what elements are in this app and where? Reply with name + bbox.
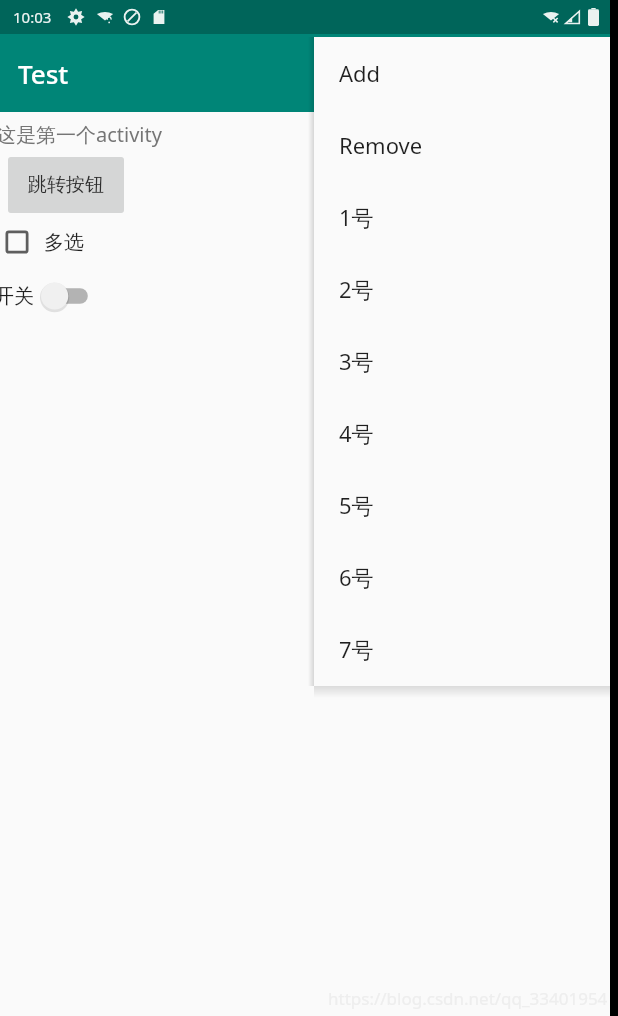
button[interactable]: 5号 — [314, 469, 610, 541]
staticText: Remove — [339, 130, 423, 160]
button[interactable]: Add — [314, 37, 610, 109]
staticText: 7号 — [339, 634, 374, 664]
staticText: https://blog.csdn.net/qq_33401954 — [328, 987, 608, 1010]
staticText: 开关 — [0, 284, 34, 309]
button[interactable]: Remove — [314, 109, 610, 181]
button[interactable]: 6号 — [314, 541, 610, 613]
button[interactable]: 跳转按钮 — [8, 157, 124, 213]
button[interactable]: 1号 — [314, 181, 610, 253]
staticText: 5号 — [339, 490, 374, 520]
staticText: 这是第一个activity — [0, 121, 162, 148]
staticText: 4号 — [339, 418, 374, 448]
staticText: 多选 — [44, 230, 84, 255]
staticText: 3号 — [339, 346, 374, 376]
button[interactable]: 2号 — [314, 253, 610, 325]
other: Toggle switch — [40, 279, 92, 313]
staticText: Add — [339, 58, 381, 88]
staticText: 跳转按钮 — [28, 173, 104, 197]
staticText: 2号 — [339, 274, 374, 304]
button[interactable]: 7号 — [314, 613, 610, 685]
staticText: 1号 — [339, 202, 374, 232]
button[interactable]: 多选 — [4, 229, 84, 255]
staticText: 10:03 — [13, 7, 52, 27]
button[interactable]: 3号 — [314, 325, 610, 397]
staticText: 6号 — [339, 562, 374, 592]
button[interactable]: 4号 — [314, 397, 610, 469]
button[interactable]: 开关 — [0, 279, 92, 313]
staticText: Test — [18, 56, 69, 91]
